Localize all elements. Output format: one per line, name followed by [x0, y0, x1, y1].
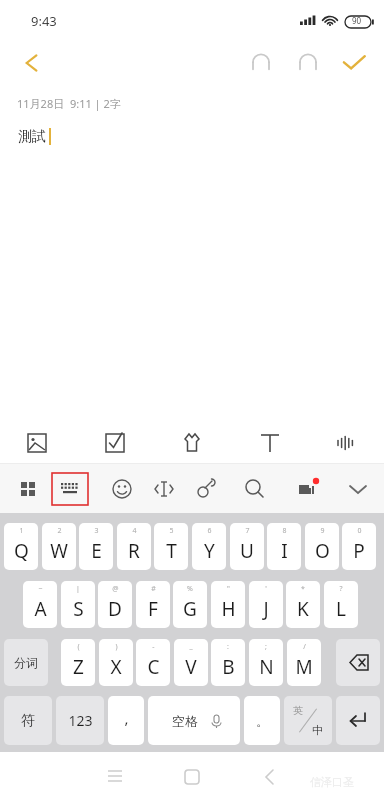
button[interactable]: 4: [117, 523, 151, 570]
button[interactable]: ): [99, 639, 133, 686]
button[interactable]: 3: [79, 523, 113, 570]
button[interactable]: 123: [56, 696, 104, 745]
button[interactable]: 空格: [148, 696, 240, 745]
button[interactable]: Keyboard: [52, 473, 88, 505]
staticText: V: [185, 654, 197, 680]
button[interactable]: Style: [174, 426, 210, 460]
staticText: 7: [245, 526, 250, 536]
button[interactable]: Back: [10, 44, 54, 82]
button[interactable]: Done: [336, 46, 372, 80]
button[interactable]: %: [173, 581, 207, 628]
button[interactable]: Recents: [95, 760, 135, 792]
button[interactable]: Emoji: [104, 471, 140, 507]
button[interactable]: Clipboard: [188, 471, 224, 507]
staticText: ,: [124, 708, 129, 728]
button[interactable]: _: [174, 639, 208, 686]
button[interactable]: ': [249, 581, 283, 628]
button[interactable]: 2: [42, 523, 76, 570]
staticText: I: [281, 538, 288, 564]
button[interactable]: -: [136, 639, 170, 686]
staticText: %: [187, 584, 193, 594]
button[interactable]: 6: [192, 523, 226, 570]
button[interactable]: Backspace: [336, 639, 380, 686]
staticText: |: [76, 584, 80, 594]
button[interactable]: Checklist: [97, 426, 133, 460]
button[interactable]: Undo: [243, 46, 279, 80]
staticText: ): [115, 642, 118, 652]
button[interactable]: ,: [108, 696, 144, 745]
button[interactable]: *: [286, 581, 320, 628]
staticText: G: [183, 596, 197, 622]
staticText: R: [128, 538, 140, 564]
staticText: :: [227, 642, 229, 652]
staticText: #: [151, 584, 156, 594]
staticText: 中: [312, 723, 323, 737]
button[interactable]: 8: [267, 523, 301, 570]
button[interactable]: 1: [4, 523, 38, 570]
staticText: 3: [94, 526, 99, 536]
button[interactable]: @: [98, 581, 132, 628]
staticText: Z: [73, 654, 84, 680]
staticText: K: [297, 596, 309, 622]
button[interactable]: :: [211, 639, 245, 686]
staticText: P: [353, 538, 365, 564]
staticText: @: [112, 584, 119, 594]
button[interactable]: #: [136, 581, 170, 628]
button[interactable]: ;: [249, 639, 283, 686]
staticText: E: [91, 538, 102, 564]
staticText: J: [263, 596, 269, 622]
button[interactable]: 英: [284, 696, 332, 745]
staticText: 空格: [172, 713, 198, 729]
staticText: 2: [57, 526, 62, 536]
staticText: W: [50, 538, 68, 564]
staticText: X: [110, 654, 122, 680]
staticText: B: [222, 654, 235, 680]
button[interactable]: 。: [244, 696, 280, 745]
button[interactable]: Voice: [327, 426, 363, 460]
button[interactable]: Home: [172, 760, 212, 792]
button[interactable]: Text format: [252, 426, 288, 460]
staticText: 英: [293, 704, 303, 717]
button[interactable]: 7: [230, 523, 264, 570]
staticText: S: [73, 596, 84, 622]
button[interactable]: Themes: [290, 471, 326, 507]
staticText: /: [303, 642, 306, 652]
staticText: 符: [21, 712, 35, 730]
button[interactable]: Hide keyboard: [340, 471, 376, 507]
staticText: 5: [169, 526, 174, 536]
staticText: L: [336, 596, 346, 622]
button[interactable]: Search: [236, 471, 272, 507]
staticText: ~: [38, 584, 43, 594]
staticText: Y: [204, 538, 215, 564]
staticText: (: [77, 642, 80, 652]
staticText: 8: [282, 526, 287, 536]
button[interactable]: /: [287, 639, 321, 686]
button[interactable]: ~: [23, 581, 57, 628]
button[interactable]: ": [211, 581, 245, 628]
staticText: 分词: [14, 655, 38, 670]
staticText: ": [227, 584, 230, 594]
button[interactable]: Enter: [336, 696, 380, 745]
button[interactable]: 5: [154, 523, 188, 570]
button[interactable]: 分词: [4, 639, 48, 686]
staticText: 9:43: [31, 12, 57, 30]
button[interactable]: 符: [4, 696, 52, 745]
button[interactable]: 9: [305, 523, 339, 570]
button[interactable]: Move cursor: [146, 471, 182, 507]
staticText: 。: [256, 713, 269, 729]
button[interactable]: Redo: [290, 46, 326, 80]
staticText: A: [34, 596, 47, 622]
button[interactable]: (: [61, 639, 95, 686]
staticText: 1: [19, 526, 24, 536]
staticText: O: [315, 538, 330, 564]
staticText: F: [148, 596, 158, 622]
button[interactable]: Insert image: [19, 426, 55, 460]
staticText: 0: [357, 526, 362, 536]
button[interactable]: Keyboard layouts: [10, 471, 46, 507]
button[interactable]: ?: [324, 581, 358, 628]
staticText: U: [240, 538, 254, 564]
button[interactable]: Back: [250, 760, 290, 792]
button[interactable]: |: [61, 581, 95, 628]
staticText: D: [108, 596, 122, 622]
button[interactable]: 0: [342, 523, 376, 570]
